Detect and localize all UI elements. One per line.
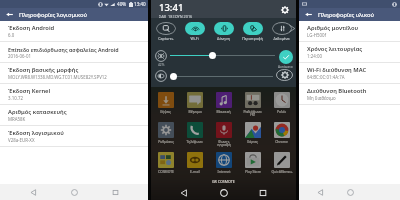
button[interactable]: Home (66, 184, 82, 200)
staticText: 3.10.72 (8, 95, 23, 101)
button[interactable]: Τηλέφωνο (180, 122, 209, 144)
button[interactable]: Ρολόι (267, 92, 296, 114)
staticText: 13:40 (134, 1, 146, 7)
button[interactable]: QuickMemo+ (267, 152, 296, 174)
staticText: Wi-Fi διεύθυνση MAC (307, 66, 367, 74)
staticText: COSMOTE (158, 169, 174, 174)
staticText: QuickMemo+ (271, 169, 293, 174)
staticText: Περιστροφή (242, 36, 263, 41)
button[interactable]: Recent apps (256, 186, 270, 200)
staticText: Ραδιόφωνο FM (243, 109, 262, 117)
staticText: Λήψεις (160, 109, 171, 114)
staticText: Αριθμός κατασκευής (8, 108, 67, 116)
staticText: Πληροφορίες υλικού (318, 11, 375, 19)
staticText: Χρόνος λειτουργίας (307, 45, 363, 53)
button[interactable]: Settings (279, 4, 290, 15)
staticText: GR COSMOTE (212, 179, 235, 184)
staticText: Φωνητ. εγγραφή (217, 139, 231, 147)
staticText: Έκδοση Android (8, 24, 55, 32)
button[interactable]: Home (217, 186, 231, 200)
staticText: Play Store (245, 169, 261, 174)
staticText: LG-H500f (307, 32, 327, 38)
staticText: 6.0 (8, 32, 15, 38)
staticText: Χάρτες (247, 139, 258, 144)
staticText: ΣΑΒ, 18 ΙΟΥΝ 2016 (159, 14, 193, 18)
staticText: Δόνηση (217, 36, 230, 41)
staticText: Τηλέφωνο (186, 139, 203, 144)
button[interactable]: Επίπεδο επιδιόρθωσης ασφαλείας Android (0, 42, 148, 62)
button[interactable]: Μουσική (209, 92, 238, 114)
staticText: 40% (117, 1, 127, 7)
button[interactable]: Capture+ (151, 18, 180, 41)
staticText: Μήνυμα (188, 109, 202, 114)
button[interactable]: Δόνηση (209, 18, 238, 41)
button[interactable]: Recent apps (107, 184, 123, 200)
button[interactable]: Έκδοση Kernel (0, 84, 148, 104)
button[interactable]: Ρυθμίσεις (151, 122, 180, 144)
button[interactable]: Αυτόματο (278, 50, 293, 68)
staticText: MRA58K (8, 116, 26, 122)
staticText: Έκδοση βασικής μορφής (8, 66, 79, 74)
button[interactable]: Χάρτες (238, 122, 267, 144)
button[interactable]: E-mail (180, 152, 209, 174)
button[interactable]: Sound settings (276, 69, 293, 81)
staticText: Διεύθυνση Bluetooth (307, 87, 367, 95)
button[interactable]: Wi-Fi (180, 18, 209, 41)
button[interactable]: Back (299, 8, 318, 21)
staticText: Αριθμός μοντέλου (307, 24, 359, 32)
staticText: Ρολόι (277, 109, 286, 114)
button[interactable]: Chrome (267, 122, 296, 144)
button[interactable]: Έκδοση βασικής μορφής (0, 63, 148, 83)
staticText: Μουσική (216, 109, 231, 114)
button[interactable]: Περιστροφή (238, 18, 267, 41)
staticText: Δεδομένα (273, 36, 290, 41)
button[interactable]: Αριθμός μοντέλου (299, 21, 400, 41)
staticText: Έκδοση Kernel (8, 87, 51, 95)
staticText: Wi-Fi (190, 36, 199, 41)
staticText: Αυτόματο (278, 65, 293, 68)
staticText: Ρυθμίσεις (158, 139, 174, 144)
staticText: 2016-06-01 (8, 53, 31, 59)
button[interactable]: Έκδοση Android (0, 21, 148, 41)
button[interactable]: COSMOTE (151, 152, 180, 174)
button[interactable]: Φωνητ. εγγραφή (209, 122, 238, 147)
staticText: Επίπεδο επιδιόρθωσης ασφαλείας Android (8, 46, 119, 53)
staticText: 64:BC:0C:01:4A:7A (307, 74, 345, 80)
staticText: 13:41 (159, 1, 184, 14)
button[interactable]: Wi-Fi διεύθυνση MAC (299, 63, 400, 83)
staticText: Chrome (275, 139, 288, 144)
button[interactable]: Διεύθυνση Bluetooth (299, 84, 400, 104)
staticText: Μη διαθέσιμο (307, 95, 336, 101)
button[interactable]: Έκδοση λογισμικού (0, 126, 148, 146)
button[interactable]: Play Store (238, 152, 267, 174)
button[interactable]: Back (312, 184, 328, 200)
button[interactable]: Home (342, 184, 358, 200)
button[interactable]: Ραδιόφωνο FM (238, 92, 267, 117)
button[interactable]: Αριθμός κατασκευής (0, 105, 148, 125)
button[interactable]: Back (25, 184, 41, 200)
staticText: Internet (217, 169, 231, 174)
staticText: Έκδοση λογισμικού (8, 129, 64, 137)
staticText: V28a-EUR-XX (8, 137, 35, 143)
button[interactable]: Μήνυμα (180, 92, 209, 114)
staticText: Capture+ (158, 36, 174, 41)
button[interactable]: Δεδομένα (267, 18, 296, 41)
button[interactable]: Internet (209, 152, 238, 174)
button[interactable]: Χρόνος λειτουργίας (299, 42, 400, 62)
button[interactable]: Λήψεις (151, 92, 180, 114)
button[interactable]: Back (0, 8, 19, 21)
staticText: 42% (158, 63, 165, 67)
staticText: Πληροφορίες λογισμικού (19, 11, 88, 19)
button[interactable]: Back (177, 186, 191, 200)
staticText: E-mail (190, 169, 200, 174)
staticText: MOLY.WR8.W1338.MD.WG.TC01.MUSE82Y.SPV12 (8, 74, 107, 80)
staticText: 1:24:00 (307, 53, 322, 59)
